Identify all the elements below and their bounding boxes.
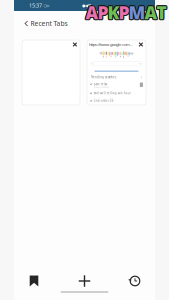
staticText: K	[107, 0, 119, 23]
staticText: M	[128, 1, 145, 24]
staticText: A	[144, 2, 157, 25]
button[interactable]: Recent Tabs	[21, 15, 70, 32]
button[interactable]: History	[115, 270, 155, 292]
staticText: A	[145, 2, 158, 25]
staticText: P	[97, 1, 108, 24]
staticText: Trending searches	[91, 75, 116, 79]
staticText: K	[108, 0, 120, 23]
staticText: P	[97, 2, 108, 25]
staticText: T	[157, 2, 167, 25]
staticText: P	[97, 0, 108, 23]
staticText: M	[129, 0, 146, 23]
staticText: A	[85, 1, 98, 24]
staticText: A	[85, 2, 98, 25]
staticText: A	[145, 0, 158, 23]
staticText: and well telling win hour	[94, 91, 131, 95]
staticText: A	[144, 0, 157, 23]
staticText: P	[118, 0, 129, 23]
staticText: P	[97, 2, 108, 25]
button[interactable]: Blank tab	[22, 40, 80, 105]
staticText: T	[156, 2, 166, 25]
staticText: M	[128, 2, 145, 25]
staticText: M	[129, 2, 146, 25]
staticText: A	[85, 0, 98, 23]
staticText: K	[107, 1, 119, 24]
staticText: A	[144, 1, 157, 24]
staticText: K	[107, 1, 119, 24]
staticText: T	[156, 0, 166, 23]
button[interactable]: Bookmarks	[14, 270, 54, 292]
staticText: A	[145, 1, 158, 24]
staticText: ○▫	[43, 3, 49, 8]
staticText: P	[118, 0, 129, 23]
staticText: P	[119, 1, 130, 24]
staticText: P	[98, 0, 109, 23]
staticText: M	[129, 1, 146, 24]
staticText: pain relax	[94, 82, 107, 86]
button[interactable]: New tab	[64, 270, 104, 292]
staticText: P	[119, 2, 130, 25]
staticText: T	[156, 1, 166, 24]
staticText: A	[86, 2, 99, 25]
staticText: P	[119, 0, 130, 23]
staticText: A	[85, 0, 98, 23]
staticText: P	[118, 1, 129, 24]
staticText: P	[118, 1, 129, 24]
staticText: A	[86, 0, 99, 23]
staticText: P	[97, 1, 108, 24]
staticText: M	[128, 0, 145, 23]
staticText: P	[98, 1, 109, 24]
staticText: T	[156, 2, 166, 25]
staticText: K	[107, 0, 119, 23]
staticText: K	[107, 2, 119, 25]
staticText: K	[107, 2, 119, 25]
staticText: P	[118, 2, 129, 25]
staticText: A	[86, 1, 99, 24]
staticText: K	[108, 2, 120, 25]
staticText: 15:37	[29, 2, 42, 9]
staticText: T	[157, 1, 167, 24]
staticText: K	[108, 1, 120, 24]
staticText: P	[97, 0, 108, 23]
staticText: T	[156, 0, 166, 23]
staticText: 2nd order 26	[94, 99, 114, 102]
staticText: A	[144, 0, 157, 23]
staticText: T	[157, 0, 167, 23]
staticText: A	[85, 2, 98, 25]
staticText: find more content.com	[94, 86, 109, 88]
staticText: M	[128, 0, 145, 23]
staticText: P	[98, 2, 109, 25]
staticText: M	[128, 2, 145, 25]
staticText: M	[128, 1, 145, 24]
button[interactable]: https://www.google.com…	[87, 40, 146, 105]
staticText: A	[144, 2, 157, 25]
staticText: A	[144, 1, 157, 24]
staticText: T	[156, 1, 166, 24]
staticText: https://www.google.com…	[89, 42, 133, 47]
staticText: P	[118, 2, 129, 25]
staticText: A	[85, 1, 98, 24]
staticText: Recent Tabs	[31, 19, 68, 28]
staticText: ●◀▼▬	[82, 3, 95, 8]
